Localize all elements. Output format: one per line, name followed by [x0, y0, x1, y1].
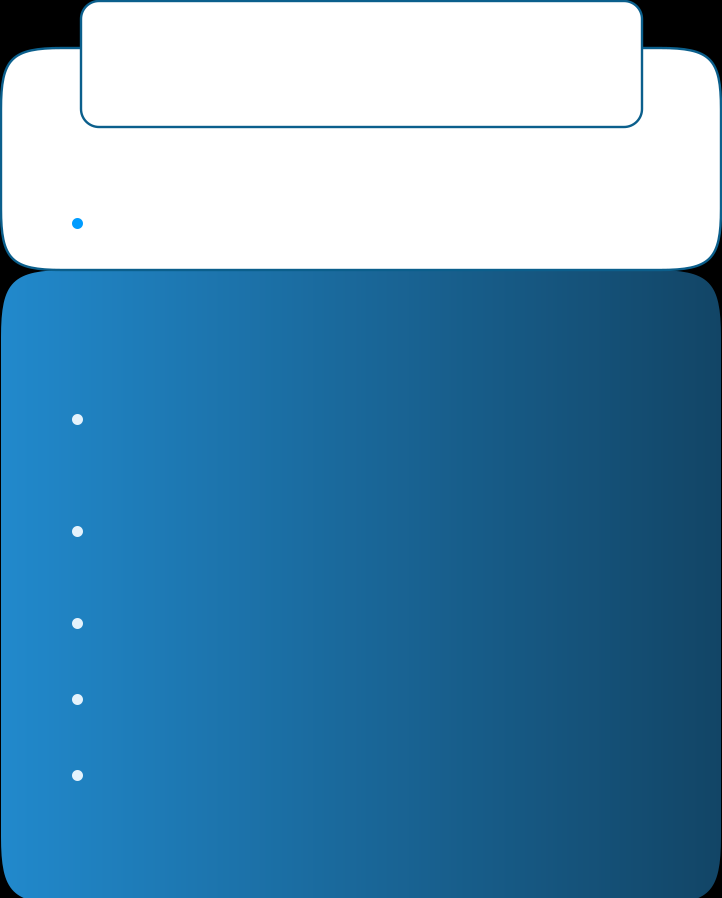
button[interactable]: Share with family	[72, 694, 648, 705]
button[interactable]: Offline downloads	[72, 526, 648, 537]
button[interactable]: Plan details	[81, 1, 642, 127]
button[interactable]: Ad-free listening	[72, 618, 648, 629]
button[interactable]: Current plan	[72, 218, 648, 229]
button[interactable]: Unlimited access	[72, 414, 648, 425]
button[interactable]: Cancel anytime	[72, 770, 648, 781]
